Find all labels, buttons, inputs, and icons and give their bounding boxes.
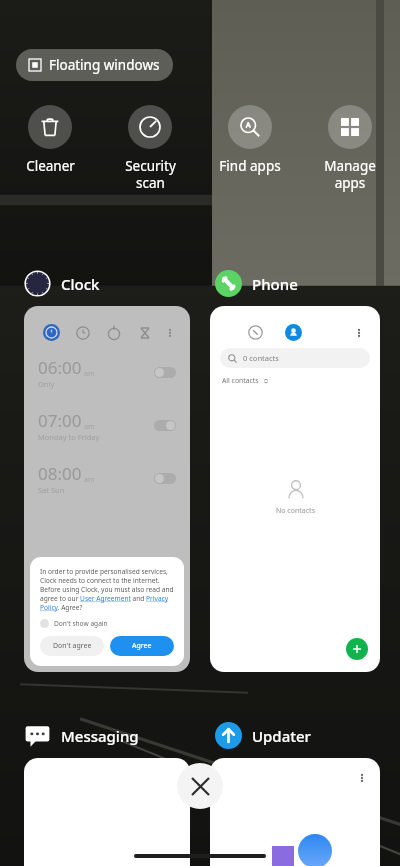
- button[interactable]: 06:00: [24, 306, 190, 672]
- staticText: Messaging: [61, 726, 139, 746]
- staticText: 07:00: [38, 409, 82, 432]
- staticText: Phone: [252, 274, 298, 294]
- button[interactable]: Cleaner: [0, 103, 100, 177]
- button[interactable]: Security scan: [100, 103, 200, 194]
- staticText: Don't show again: [54, 619, 108, 628]
- staticText: No contacts: [276, 506, 315, 516]
- button[interactable]: 07:00: [24, 409, 190, 442]
- button[interactable]: Alarm toggle: [154, 367, 176, 378]
- staticText: Floating windows: [49, 56, 160, 74]
- staticText: Agree: [132, 641, 152, 651]
- button[interactable]: 08:00: [24, 462, 190, 495]
- button[interactable]: Agree: [110, 636, 174, 656]
- staticText: am: [84, 422, 95, 432]
- staticText: Manage apps: [324, 157, 376, 192]
- staticText: Updater: [252, 726, 311, 746]
- staticText: 08:00: [38, 462, 82, 485]
- button[interactable]: Alarm toggle: [154, 420, 176, 431]
- button[interactable]: Find apps: [200, 103, 300, 177]
- button[interactable]: Manage apps: [300, 103, 400, 194]
- staticText: Cleaner: [26, 157, 75, 175]
- staticText: am: [84, 369, 95, 379]
- button[interactable]: Updater: [215, 722, 311, 749]
- button[interactable]: 0 contacts: [210, 306, 380, 672]
- staticText: All contacts: [222, 376, 259, 385]
- button[interactable]: 06:00: [24, 356, 190, 389]
- staticText: 06:00: [38, 356, 82, 379]
- button[interactable]: [210, 758, 380, 866]
- button[interactable]: All contacts: [222, 376, 269, 385]
- staticText: am: [84, 475, 95, 485]
- button[interactable]: Clock: [24, 270, 100, 297]
- staticText: Don't agree: [53, 641, 92, 651]
- button[interactable]: Messaging: [24, 722, 139, 749]
- button[interactable]: 0 contacts: [220, 348, 370, 368]
- button[interactable]: Don't agree: [40, 636, 104, 656]
- button[interactable]: Don't show again: [40, 619, 108, 628]
- staticText: Clock: [61, 274, 100, 294]
- button[interactable]: Add contact: [346, 638, 368, 660]
- button[interactable]: Alarm toggle: [154, 473, 176, 484]
- staticText: In order to provide personalised service…: [40, 567, 174, 612]
- staticText: Only: [38, 379, 55, 389]
- staticText: Monday to Friday: [38, 432, 100, 442]
- staticText: Security scan: [125, 157, 176, 192]
- button[interactable]: [24, 758, 190, 866]
- staticText: Sat Sun: [38, 485, 65, 495]
- button[interactable]: Phone: [215, 270, 298, 297]
- staticText: Find apps: [219, 157, 281, 175]
- button[interactable]: Floating windows: [16, 49, 173, 81]
- button[interactable]: Close: [177, 763, 223, 809]
- staticText: 0 contacts: [243, 353, 279, 363]
